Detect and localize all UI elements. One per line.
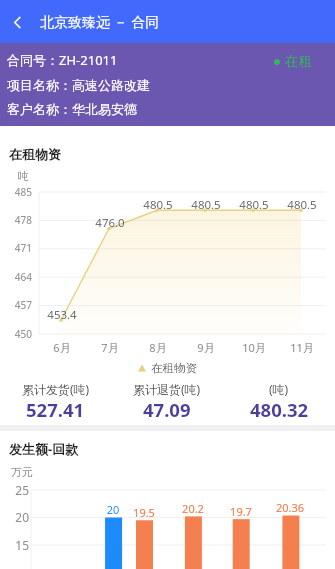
- staticText: 527.41: [26, 397, 85, 422]
- staticText: 在租物资: [9, 146, 61, 162]
- staticText: 471: [6, 241, 32, 255]
- staticText: 北京致臻远 － 合同: [40, 12, 160, 31]
- staticText: 8月: [142, 340, 174, 355]
- staticText: 450: [6, 327, 32, 341]
- staticText: 累计发货(吨): [22, 381, 90, 397]
- staticText: 480.5: [138, 197, 178, 213]
- staticText: 480.5: [234, 197, 274, 213]
- staticText: 20.2: [173, 501, 213, 516]
- staticText: 20: [93, 502, 133, 517]
- staticText: (吨): [269, 381, 289, 397]
- staticText: 480.5: [282, 197, 322, 213]
- staticText: 吨: [18, 169, 29, 183]
- staticText: 万元: [11, 465, 33, 479]
- staticText: 19.7: [221, 504, 261, 519]
- staticText: 47.09: [143, 397, 191, 422]
- staticText: 478: [6, 213, 32, 227]
- staticText: 在租: [285, 53, 312, 70]
- staticText: 20: [6, 509, 29, 525]
- button[interactable]: 返回: [0, 5, 34, 39]
- staticText: 11月: [286, 340, 318, 355]
- staticText: 6月: [46, 340, 78, 355]
- staticText: 累计退货(吨): [133, 381, 201, 397]
- staticText: 10月: [238, 340, 270, 355]
- staticText: 合同号：ZH-21011: [7, 51, 118, 69]
- staticText: 25: [6, 482, 29, 498]
- staticText: 客户名称：华北易安德: [7, 101, 137, 117]
- staticText: 15: [6, 537, 29, 553]
- staticText: 7月: [94, 340, 126, 355]
- staticText: 20.36: [270, 500, 310, 515]
- staticText: 464: [6, 270, 32, 284]
- staticText: 9月: [190, 340, 222, 355]
- staticText: 453.4: [42, 307, 82, 323]
- staticText: 项目名称：高速公路改建: [7, 77, 150, 93]
- staticText: 480.32: [250, 397, 309, 422]
- staticText: 在租物资: [151, 361, 197, 375]
- staticText: 485: [6, 185, 32, 199]
- staticText: 457: [6, 298, 32, 312]
- staticText: 480.5: [186, 197, 226, 213]
- staticText: 发生额-回款: [9, 440, 79, 458]
- staticText: 476.0: [90, 215, 130, 231]
- staticText: 19.5: [124, 505, 164, 520]
